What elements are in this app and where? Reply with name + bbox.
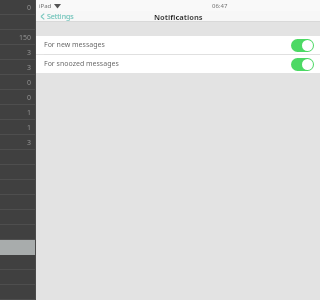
staticText: 3 <box>27 138 32 148</box>
button[interactable]: Settings <box>38 11 76 22</box>
staticText: Notifications <box>154 12 203 22</box>
button[interactable] <box>0 150 36 165</box>
button[interactable]: Toggle on <box>291 39 314 52</box>
button[interactable]: For snoozed messages <box>36 55 320 73</box>
staticText: 1 <box>27 123 32 133</box>
button[interactable]: 0 <box>0 0 36 15</box>
button[interactable] <box>0 270 36 285</box>
button[interactable]: 1 <box>0 105 36 120</box>
button[interactable]: 0 <box>0 90 36 105</box>
staticText: 0 <box>27 93 32 103</box>
staticText: 3 <box>27 63 32 73</box>
button[interactable] <box>0 180 36 195</box>
staticText: Settings <box>47 12 74 21</box>
staticText: 3 <box>27 48 32 58</box>
button[interactable]: 3 <box>0 45 36 60</box>
staticText: iPad <box>39 2 52 10</box>
button[interactable] <box>0 195 36 210</box>
button[interactable] <box>0 15 36 30</box>
button[interactable]: 3 <box>0 60 36 75</box>
staticText: 06:47 <box>212 2 228 10</box>
button[interactable]: 1 <box>0 120 36 135</box>
staticText: 150 <box>19 33 32 43</box>
button[interactable] <box>0 255 36 270</box>
staticText: For new messages <box>44 40 105 50</box>
button[interactable] <box>0 225 36 240</box>
button[interactable]: 3 <box>0 135 36 150</box>
button[interactable]: 0 <box>0 75 36 90</box>
button[interactable] <box>0 285 36 300</box>
staticText: For snoozed messages <box>44 59 119 69</box>
button[interactable] <box>0 210 36 225</box>
staticText: 1 <box>27 108 32 118</box>
staticText: 0 <box>27 3 32 13</box>
button[interactable]: Toggle on <box>291 58 314 71</box>
button[interactable]: 150 <box>0 30 36 45</box>
button[interactable] <box>0 165 36 180</box>
button[interactable]: For new messages <box>36 36 320 54</box>
staticText: 0 <box>27 78 32 88</box>
button[interactable] <box>0 240 36 255</box>
